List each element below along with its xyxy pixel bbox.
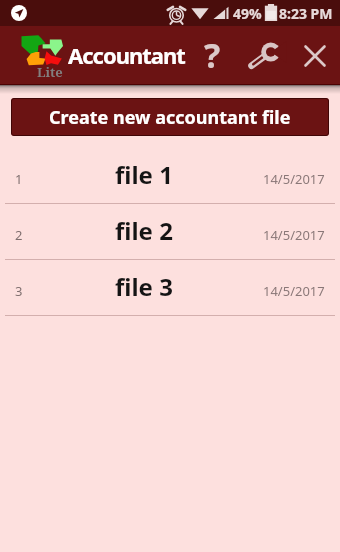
button[interactable]: 2 xyxy=(0,204,340,259)
button[interactable]: Create new accountant file xyxy=(11,98,329,136)
staticText: file 3 xyxy=(115,270,173,303)
staticText: file 1 xyxy=(115,158,173,191)
staticText: 1 xyxy=(15,170,23,188)
button[interactable]: Settings xyxy=(238,26,289,84)
staticText: 14/5/2017 xyxy=(263,170,325,188)
button[interactable]: 3 xyxy=(0,260,340,315)
staticText: 8:23 PM xyxy=(279,4,333,23)
staticText: 14/5/2017 xyxy=(263,282,325,300)
staticText: file 2 xyxy=(115,214,173,247)
staticText: Accountant xyxy=(68,40,185,70)
staticText: 49% xyxy=(233,4,262,23)
staticText: Lite xyxy=(37,63,63,81)
button[interactable]: Help xyxy=(194,26,238,84)
button[interactable]: Close xyxy=(289,26,340,84)
staticText: ? xyxy=(204,32,221,78)
staticText: Create new accountant file xyxy=(49,105,291,130)
button[interactable]: 1 xyxy=(0,148,340,203)
staticText: 2 xyxy=(15,226,23,244)
staticText: 3 xyxy=(15,282,23,300)
staticText: 14/5/2017 xyxy=(263,226,325,244)
